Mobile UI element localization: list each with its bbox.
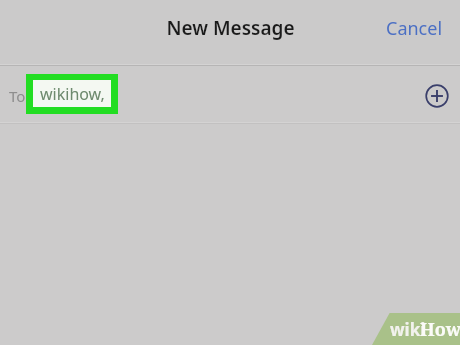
staticText: Cancel [386,16,443,41]
staticText: New Message [166,15,295,41]
staticText: How [420,317,460,340]
button[interactable]: Cancel [380,12,448,44]
button[interactable]: wikihow, [33,80,111,107]
button[interactable]: Add contact [424,83,450,109]
staticText: wikihow, [40,83,105,105]
staticText: To [9,86,26,106]
staticText: wiki [390,318,426,340]
